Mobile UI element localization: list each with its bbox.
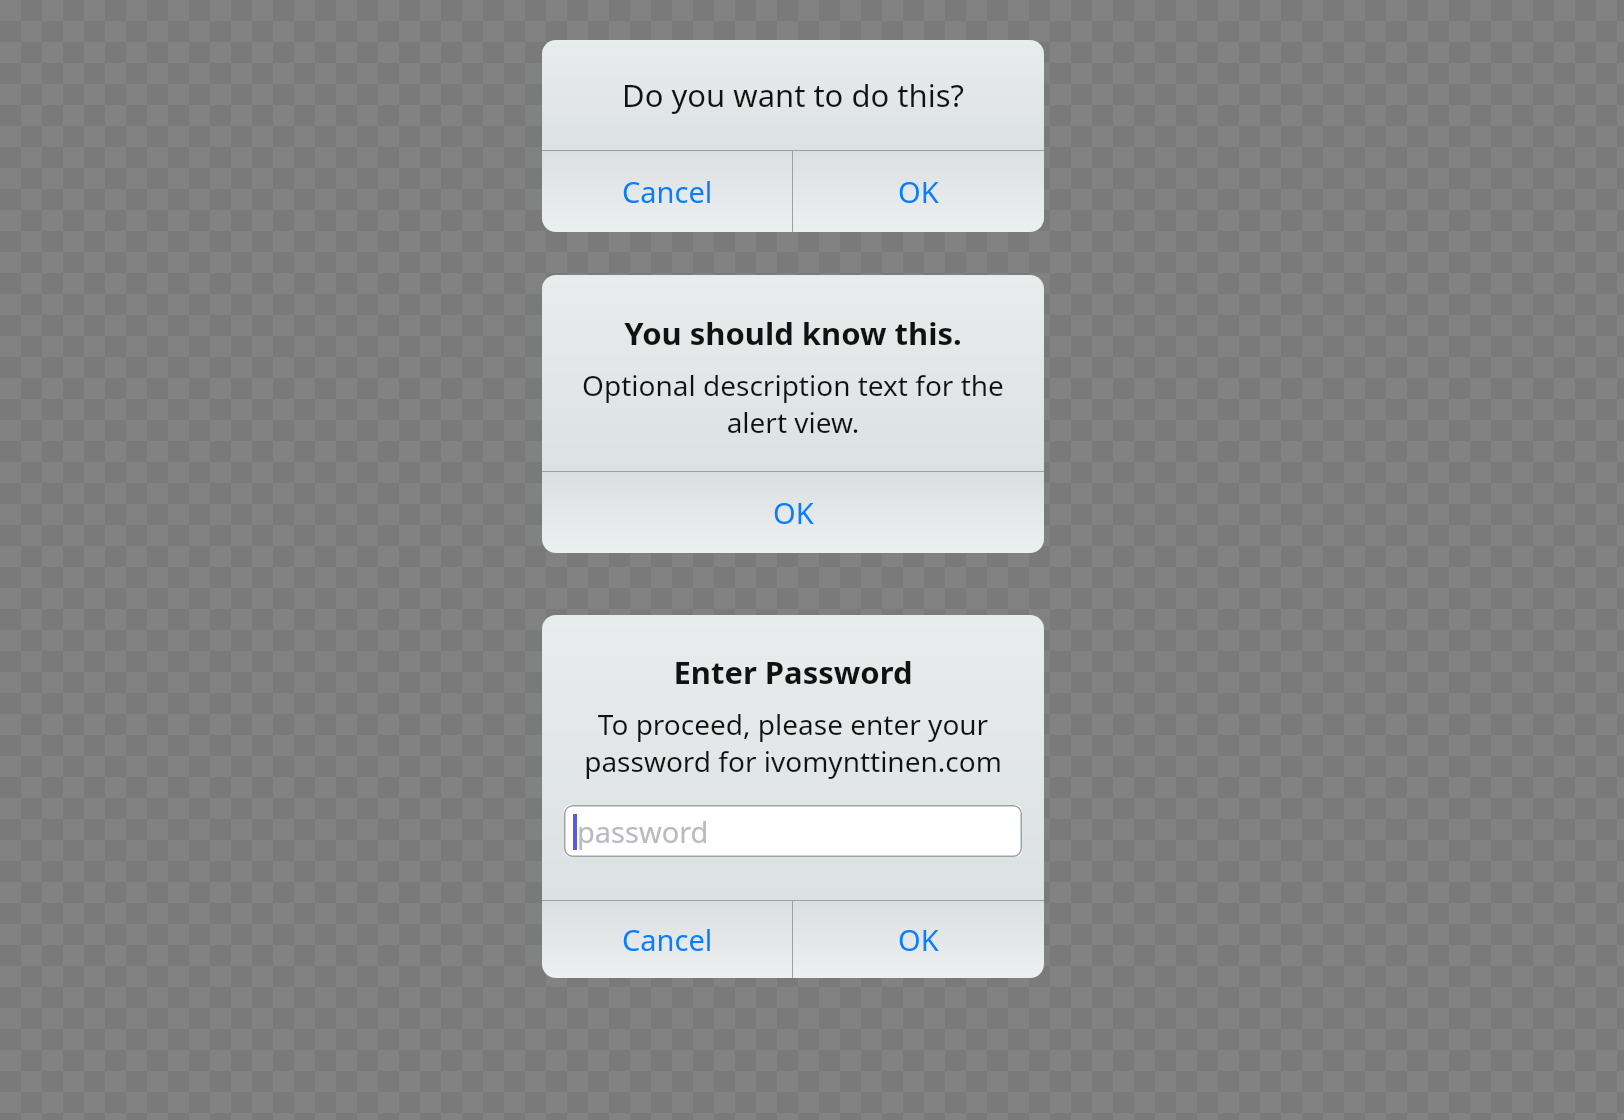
button[interactable]: OK bbox=[542, 472, 1044, 553]
staticText: OK bbox=[773, 493, 814, 532]
staticText: OK bbox=[898, 172, 939, 211]
staticText: Cancel bbox=[622, 920, 713, 959]
button[interactable]: Cancel bbox=[542, 901, 792, 978]
button[interactable]: password bbox=[564, 805, 1022, 857]
staticText: OK bbox=[898, 920, 939, 959]
staticText: Do you want to do this? bbox=[542, 74, 1044, 116]
staticText: Optional description text for the alert … bbox=[566, 366, 1020, 441]
button[interactable]: Cancel bbox=[542, 151, 792, 232]
staticText: password bbox=[577, 812, 709, 851]
button[interactable]: OK bbox=[793, 151, 1044, 232]
staticText: To proceed, please enter your password f… bbox=[558, 705, 1028, 780]
staticText: Cancel bbox=[622, 172, 713, 211]
button[interactable]: OK bbox=[793, 901, 1044, 978]
staticText: You should know this. bbox=[566, 312, 1020, 354]
staticText: Enter Password bbox=[558, 651, 1028, 693]
